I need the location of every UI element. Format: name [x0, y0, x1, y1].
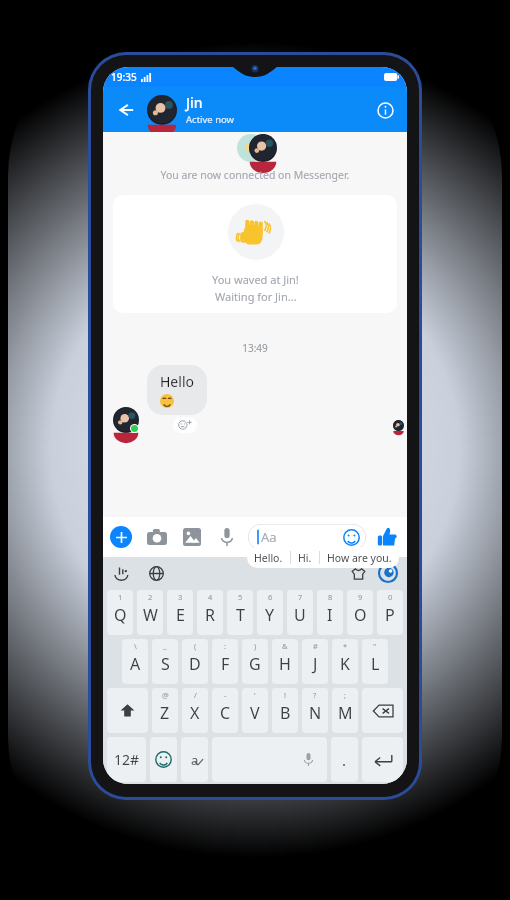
button[interactable]: 7 — [287, 590, 313, 635]
button[interactable]: ! — [272, 688, 298, 733]
button[interactable]: 0 — [377, 590, 403, 635]
button[interactable]: Conversation info — [371, 96, 399, 124]
staticText: Aa — [261, 528, 277, 546]
button[interactable]: Add reaction — [173, 417, 197, 433]
button[interactable]: Change language — [145, 562, 167, 584]
staticText: 5 — [238, 592, 243, 602]
button[interactable]: Hi. — [291, 547, 319, 568]
staticText: A — [130, 653, 141, 675]
staticText: J — [313, 653, 318, 675]
staticText: 12# — [114, 750, 140, 769]
button[interactable]: : — [212, 639, 238, 684]
button[interactable]: Camera — [145, 525, 169, 549]
button[interactable]: Gallery — [180, 525, 204, 549]
staticText: You are now connected on Messenger. — [103, 168, 407, 182]
staticText: ) — [254, 641, 257, 651]
button[interactable]: Voice message — [215, 525, 239, 549]
staticText: 2 — [148, 592, 153, 602]
button[interactable]: 3 — [167, 590, 193, 635]
staticText: Q — [114, 604, 127, 626]
button[interactable]: \ — [122, 639, 148, 684]
button[interactable]: " — [362, 639, 388, 684]
button[interactable]: Shift — [107, 688, 148, 733]
button[interactable]: ; — [332, 688, 358, 733]
button[interactable]: Backspace — [362, 688, 403, 733]
button[interactable]: * — [332, 639, 358, 684]
staticText: Hi. — [298, 551, 312, 565]
staticText: # — [313, 641, 318, 651]
button[interactable]: Emoji — [342, 528, 360, 546]
button[interactable]: Period — [331, 737, 358, 782]
staticText: Waiting for Jin... — [215, 289, 297, 304]
button[interactable]: 8 — [317, 590, 343, 635]
staticText: 7 — [298, 592, 303, 602]
button[interactable]: 9 — [347, 590, 373, 635]
staticText: ? — [313, 690, 317, 700]
staticText: * — [343, 641, 348, 651]
staticText: M — [338, 702, 353, 724]
staticText: Hello — [160, 372, 194, 391]
button[interactable]: Send like — [374, 524, 400, 550]
staticText: 13:49 — [103, 341, 407, 355]
staticText: N — [309, 702, 322, 724]
button[interactable]: ? — [302, 688, 328, 733]
staticText: O — [354, 604, 367, 626]
button[interactable]: 6 — [257, 590, 283, 635]
button[interactable]: Space — [212, 737, 327, 782]
staticText: ! — [284, 690, 287, 700]
button[interactable]: Emoji — [150, 737, 177, 782]
staticText: Z — [160, 702, 170, 724]
button[interactable]: & — [272, 639, 298, 684]
button[interactable]: Assistant — [377, 562, 399, 584]
button[interactable]: - — [212, 688, 238, 733]
button[interactable]: Hello — [147, 365, 207, 415]
staticText: W — [143, 604, 158, 626]
button[interactable]: ( — [182, 639, 208, 684]
button[interactable]: / — [182, 688, 208, 733]
staticText: / — [194, 690, 197, 700]
staticText: R — [205, 604, 215, 626]
staticText: 0 — [388, 592, 393, 602]
staticText: V — [250, 702, 260, 724]
staticText: F — [221, 653, 230, 675]
button[interactable]: ) — [242, 639, 268, 684]
button[interactable]: Back — [111, 95, 141, 125]
staticText: U — [294, 604, 306, 626]
button[interactable]: _ — [152, 639, 178, 684]
staticText: @ — [162, 690, 169, 700]
staticText: C — [220, 702, 231, 724]
button[interactable]: Hello. — [247, 547, 290, 568]
staticText: G — [249, 653, 261, 675]
staticText: 19:35 — [111, 70, 137, 84]
button[interactable]: ' — [242, 688, 268, 733]
button[interactable]: Enter — [362, 737, 403, 782]
button[interactable]: 5 — [227, 590, 253, 635]
staticText: 8 — [328, 592, 333, 602]
button[interactable]: Symbols — [107, 737, 146, 782]
staticText: Y — [265, 604, 275, 626]
button[interactable]: You waved at Jin! — [113, 195, 397, 313]
button[interactable]: # — [302, 639, 328, 684]
staticText: K — [340, 653, 350, 675]
button[interactable]: More actions — [110, 526, 132, 548]
button[interactable]: 4 — [197, 590, 223, 635]
button[interactable]: How are you. — [320, 547, 399, 568]
button[interactable]: Stickers — [347, 562, 369, 584]
staticText: D — [189, 653, 201, 675]
staticText: You waved at Jin! — [212, 272, 299, 287]
button[interactable]: 1 — [107, 590, 133, 635]
button[interactable]: Language — [181, 737, 208, 782]
staticText: & — [282, 641, 288, 651]
staticText: " — [373, 641, 377, 651]
staticText: Active now — [186, 113, 235, 126]
button[interactable]: Handwriting — [111, 562, 133, 584]
staticText: 3 — [178, 592, 183, 602]
button[interactable]: @ — [152, 688, 178, 733]
staticText: - — [224, 690, 227, 700]
button[interactable]: Jin — [147, 93, 371, 126]
staticText: 6 — [268, 592, 273, 602]
button[interactable]: 2 — [137, 590, 163, 635]
staticText: : — [224, 641, 227, 651]
staticText: ; — [344, 690, 347, 700]
button[interactable]: Aa — [248, 524, 366, 550]
